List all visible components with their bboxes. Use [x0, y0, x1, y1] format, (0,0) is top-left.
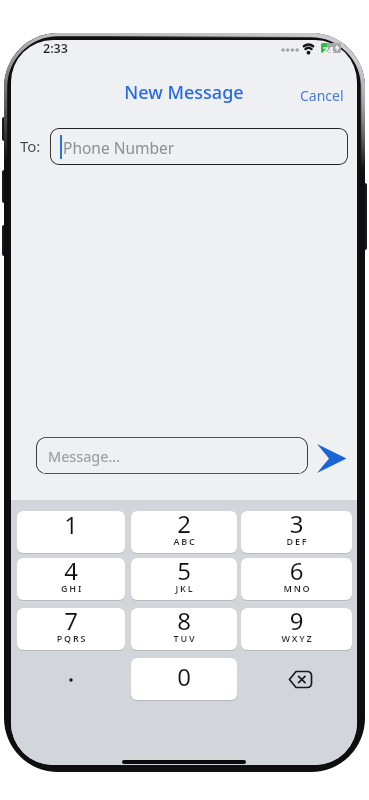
button[interactable]: 0 — [131, 658, 237, 701]
staticText: 6 — [241, 558, 352, 587]
staticText: GHI — [18, 582, 125, 594]
staticText: 9 — [241, 608, 352, 637]
button[interactable]: Phone Number — [50, 128, 348, 165]
staticText: DEF — [242, 535, 352, 547]
staticText: TUV — [132, 632, 237, 644]
button[interactable]: 4 — [17, 558, 125, 601]
staticText: To: — [20, 136, 41, 156]
staticText: 2:33 — [43, 40, 68, 57]
staticText: Phone Number — [63, 137, 175, 158]
button[interactable] — [241, 658, 352, 701]
staticText: ABC — [132, 535, 237, 547]
staticText: WXYZ — [242, 632, 352, 644]
button[interactable]: 7 — [17, 608, 125, 651]
staticText: 4 — [17, 558, 125, 587]
button[interactable]: Cancel — [300, 86, 344, 105]
button[interactable]: 2 — [131, 511, 237, 554]
staticText: 0 — [131, 660, 237, 693]
staticText: Message... — [48, 446, 121, 466]
button[interactable]: Message... — [36, 437, 308, 474]
staticText: JKL — [132, 582, 237, 594]
button[interactable] — [17, 658, 125, 701]
staticText: PQRS — [18, 632, 125, 644]
button[interactable]: 6 — [241, 558, 352, 601]
button[interactable] — [313, 440, 349, 476]
staticText: Cancel — [300, 86, 344, 105]
button[interactable]: 8 — [131, 608, 237, 651]
staticText: New Message — [11, 80, 357, 105]
staticText: MNO — [242, 582, 352, 594]
staticText: 1 — [17, 511, 125, 541]
staticText: 8 — [131, 608, 237, 637]
staticText: 7 — [17, 608, 125, 637]
staticText: 3 — [241, 511, 352, 540]
staticText: 5 — [131, 558, 237, 587]
button[interactable]: 3 — [241, 511, 352, 554]
button[interactable]: 1 — [17, 511, 125, 554]
staticText: 2 — [131, 511, 237, 540]
button[interactable]: 5 — [131, 558, 237, 601]
button[interactable]: 9 — [241, 608, 352, 651]
staticText: 24 — [323, 43, 334, 53]
